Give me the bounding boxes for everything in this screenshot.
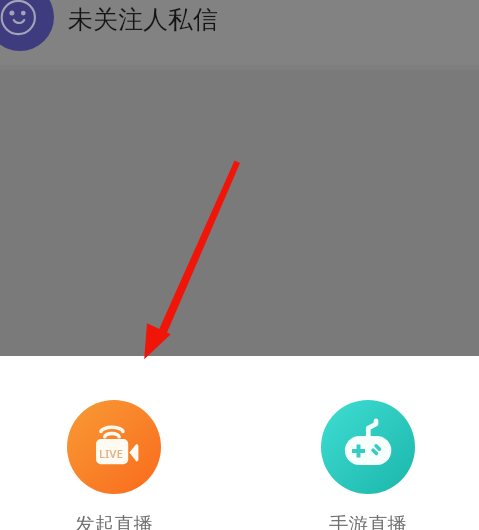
button[interactable]: LIVE xyxy=(67,400,161,530)
button[interactable]: Profile avatar xyxy=(0,0,54,51)
staticText: 发起直播 xyxy=(75,512,153,530)
button[interactable]: 手游直播 xyxy=(321,400,415,530)
staticText: 未关注人私信 xyxy=(68,4,218,35)
staticText: 手游直播 xyxy=(329,512,407,530)
staticText: LIVE xyxy=(99,446,124,461)
